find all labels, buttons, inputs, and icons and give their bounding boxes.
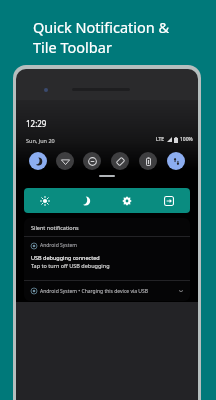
staticText: Tile Toolbar (33, 37, 112, 57)
button[interactable]: Wi-Fi (51, 152, 78, 170)
button[interactable]: Settings (106, 188, 148, 213)
staticText: Sun, Jun 20 (26, 137, 55, 144)
button[interactable]: Open app (148, 188, 190, 213)
button[interactable]: Silent notifications (24, 218, 190, 236)
staticText: 100% (180, 136, 193, 143)
button[interactable]: Do not disturb (78, 152, 106, 170)
button[interactable]: Brightness (24, 188, 65, 213)
button[interactable]: Do not disturb (24, 152, 51, 170)
staticText: Silent notifications (31, 224, 79, 231)
staticText: USB debugging connected (31, 254, 100, 261)
staticText: Tap to turn off USB debugging (31, 262, 110, 269)
button[interactable]: Night mode (65, 188, 106, 213)
button[interactable]: Android System • Charging this device vi… (24, 281, 190, 301)
button[interactable]: Battery saver (134, 152, 162, 170)
staticText: 12:29 (26, 118, 47, 129)
button[interactable]: Mobile data (162, 152, 190, 170)
staticText: Android System (40, 242, 78, 249)
staticText: Quick Notification & (33, 17, 170, 37)
staticText: LTE (156, 136, 165, 143)
button[interactable]: Android System (24, 237, 190, 280)
button[interactable]: Auto rotate (106, 152, 134, 170)
staticText: Android System • Charging this device vi… (40, 288, 148, 295)
